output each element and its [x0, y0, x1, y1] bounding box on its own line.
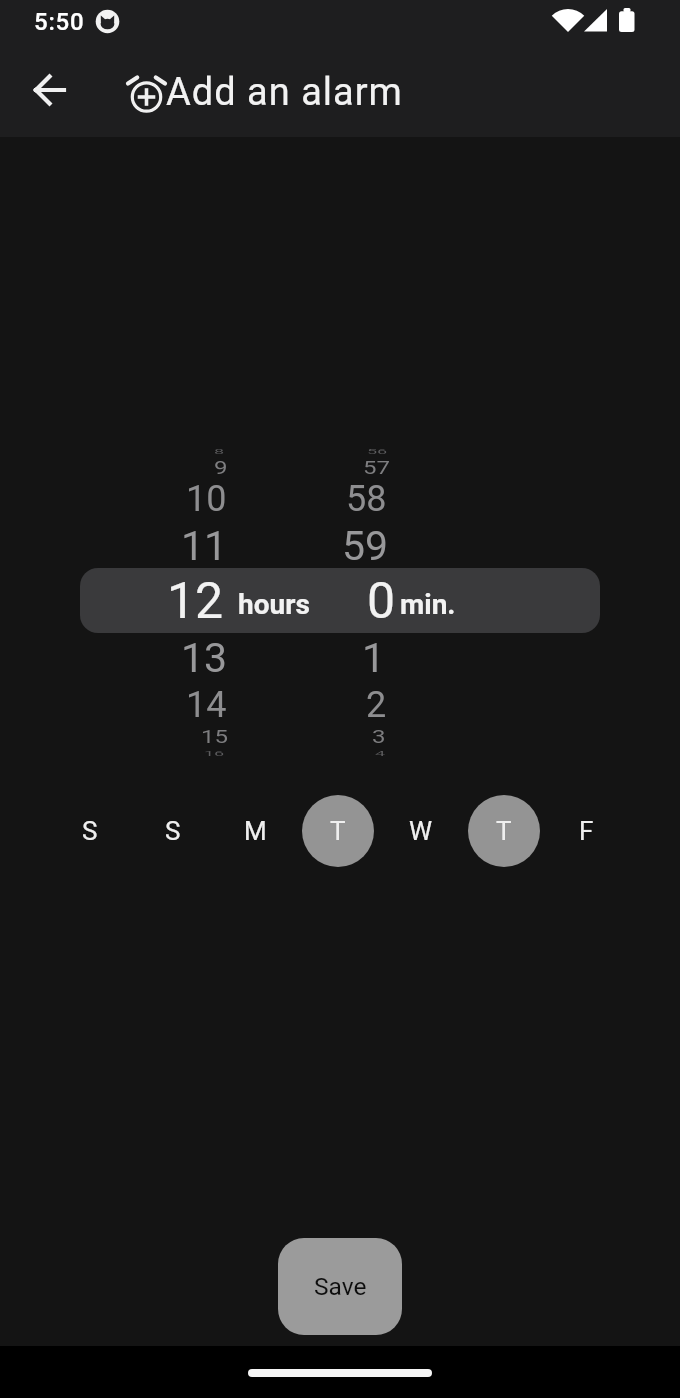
staticText: W	[409, 816, 433, 846]
staticText: 4	[375, 749, 386, 758]
button[interactable]: W	[385, 795, 457, 867]
staticText: 14	[186, 684, 227, 726]
staticText: 1	[362, 634, 386, 682]
staticText: 11	[181, 522, 228, 570]
staticText: Add an alarm	[166, 70, 403, 115]
staticText: 12	[167, 572, 224, 631]
staticText: 57	[363, 457, 390, 479]
staticText: 3	[372, 726, 386, 748]
button[interactable]	[21, 62, 77, 118]
staticText: S	[165, 816, 181, 846]
staticText: 16	[204, 749, 225, 758]
staticText: 56	[367, 447, 388, 456]
staticText: 8	[214, 447, 225, 456]
staticText: Save	[314, 1272, 367, 1301]
staticText: S	[82, 816, 98, 846]
button[interactable]: M	[219, 795, 291, 867]
button[interactable]: T	[302, 795, 374, 867]
staticText: 10	[186, 478, 227, 520]
staticText: 59	[342, 522, 389, 570]
staticText: 15	[201, 726, 228, 748]
staticText: 9	[214, 457, 228, 479]
staticText: hours	[238, 588, 310, 621]
staticText: min.	[400, 588, 456, 621]
staticText: 13	[181, 634, 228, 682]
button[interactable]: T	[468, 795, 540, 867]
staticText: T	[330, 816, 346, 846]
button[interactable]: S	[137, 795, 209, 867]
staticText: F	[579, 816, 594, 846]
staticText: 5:50	[34, 8, 85, 36]
staticText: 0	[367, 572, 396, 631]
button[interactable]: F	[550, 795, 622, 867]
staticText: 2	[366, 684, 387, 726]
staticText: 58	[346, 478, 387, 520]
staticText: M	[244, 816, 267, 846]
button[interactable]: S	[54, 795, 126, 867]
button[interactable]: Save	[278, 1238, 402, 1335]
staticText: T	[496, 816, 512, 846]
